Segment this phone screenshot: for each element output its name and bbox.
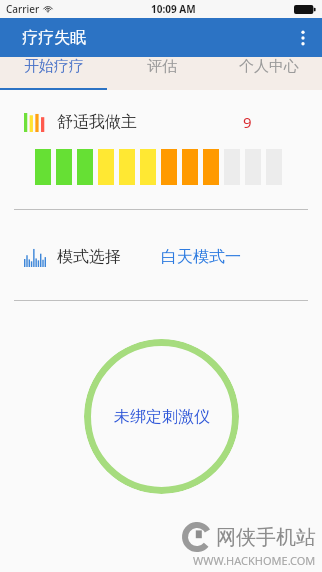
button[interactable]: 个人中心 [215, 57, 322, 76]
staticText: 疗疗失眠 [22, 28, 86, 48]
staticText: 开始疗疗 [24, 57, 84, 76]
button[interactable]: 舒适我做主 [0, 107, 322, 137]
staticText: 9 [243, 112, 252, 132]
staticText: Carrier [6, 2, 40, 16]
staticText: 未绑定刺激仪 [114, 407, 210, 427]
staticText: WWW.HACKHOME.COM [193, 553, 316, 568]
staticText: 评估 [147, 57, 177, 76]
staticText: 个人中心 [239, 57, 299, 76]
staticText: 白天模式一 [161, 247, 241, 267]
button[interactable]: 开始疗疗 [0, 57, 108, 76]
button[interactable]: 未绑定刺激仪 [84, 339, 239, 494]
staticText: 网侠手机站 [216, 525, 316, 550]
staticText: 模式选择 [57, 247, 121, 267]
staticText: 舒适我做主 [57, 112, 137, 132]
staticText: 10:09 AM [151, 2, 196, 16]
button[interactable]: 评估 [108, 57, 215, 76]
button[interactable]: More options [284, 19, 322, 57]
button[interactable]: 模式选择 [0, 241, 322, 273]
